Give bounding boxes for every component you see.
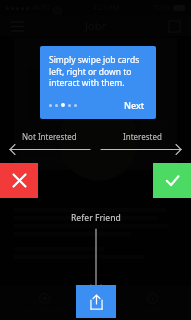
staticText: Interested bbox=[123, 131, 162, 142]
staticText: Not Interested bbox=[22, 131, 77, 142]
staticText: Refer Friend bbox=[71, 212, 121, 224]
button[interactable]: Share, refer a friend bbox=[76, 285, 116, 318]
staticText: Share bbox=[92, 306, 109, 314]
staticText: Designer bbox=[21, 141, 55, 152]
button[interactable]: Interested bbox=[153, 163, 191, 198]
staticText: Simply swipe job cards left, right or do… bbox=[49, 54, 147, 88]
staticText: Product Designer bbox=[21, 154, 79, 164]
button[interactable]: Not interested bbox=[0, 163, 38, 198]
button[interactable]: Menu bbox=[9, 18, 25, 34]
button[interactable]: Share bbox=[88, 291, 113, 316]
staticText: Next bbox=[124, 99, 145, 111]
button[interactable]: Next bbox=[122, 97, 147, 113]
